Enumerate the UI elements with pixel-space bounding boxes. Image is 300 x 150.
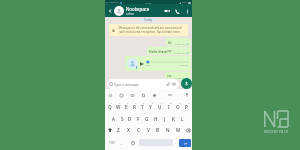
button[interactable]: X [123,125,133,135]
staticText: Noobspace [126,6,150,12]
staticText: 11:04 AM [178,64,189,67]
button[interactable]: Hello there??? [147,47,191,55]
staticText: Messages to this chat and calls are now … [116,26,184,34]
button[interactable]: Shift [105,125,114,135]
button[interactable]: O [173,100,182,113]
staticText: I [168,104,170,110]
staticText: 2 [119,102,121,105]
button[interactable]: Enter [179,139,191,147]
button[interactable]: . [173,135,179,150]
staticText: 0 [188,102,190,105]
staticText: 11:02 AM [174,42,185,45]
button[interactable]: Emoji [126,135,139,150]
staticText: E [125,104,128,110]
staticText: N [166,127,170,133]
button[interactable]: Keyboard tool 4 [152,93,156,97]
button[interactable]: Keyboard tool 3 [141,93,145,97]
button[interactable]: C [133,125,143,135]
staticText: Y [149,104,152,110]
button[interactable]: V [143,125,153,135]
staticText: Hello there??? [149,49,172,54]
button[interactable]: ?123 [106,135,118,150]
staticText: 3 [127,102,129,105]
button[interactable]: G [142,113,151,125]
button[interactable]: J [160,113,169,125]
button[interactable]: Back [105,4,192,17]
button[interactable]: T [138,100,146,113]
staticText: 5 [143,102,145,105]
button[interactable]: ??? [165,72,191,80]
staticText: 11:05 AM [174,76,185,79]
staticText: C [137,127,140,133]
button[interactable]: More [168,93,172,97]
button[interactable]: Type a message [107,79,179,89]
staticText: O [176,104,180,110]
button[interactable]: K [169,113,178,125]
button[interactable]: Keyboard tool 0 [108,93,112,97]
staticText: K [172,116,175,122]
button[interactable]: U [155,100,164,113]
button[interactable]: Keyboard tool 2 [130,93,134,97]
button[interactable]: , [118,135,126,150]
button[interactable]: R [130,100,138,113]
button[interactable]: Today [141,18,156,22]
button[interactable]: D [126,113,134,125]
staticText: . [175,140,177,145]
staticText: 12:26 [145,1,152,4]
staticText: 10:42 AM [109,1,119,4]
staticText: L [181,116,184,122]
staticText: H [154,116,158,122]
staticText: ?123 [109,141,115,145]
button[interactable]: N [163,125,173,135]
staticText: T [141,104,144,110]
button[interactable]: Q [106,100,114,113]
button[interactable]: P [182,100,191,113]
button[interactable]: More options [184,8,190,14]
button[interactable]: E [122,100,130,113]
button[interactable]: Messages to this chat and calls are now … [109,24,188,36]
staticText: J [164,116,166,122]
button[interactable]: Back [107,8,113,14]
staticText: X [127,127,130,133]
staticText: 4 [135,102,137,105]
staticText: 11:02 AM [174,51,185,54]
button[interactable]: 0:05 [125,56,191,71]
button[interactable]: Voice input [185,93,189,97]
button[interactable]: I [164,100,173,113]
staticText: 0:05 [146,64,151,67]
staticText: 9 [179,102,181,105]
staticText: V [147,127,150,133]
staticText: W [116,104,121,110]
button[interactable]: Backspace [183,125,192,135]
button[interactable]: Z [114,125,123,135]
button[interactable]: Video call [163,7,170,14]
button[interactable]: Hi [166,38,191,46]
button[interactable]: F [134,113,142,125]
staticText: B [156,127,160,133]
staticText: A [112,116,116,122]
staticText: P [185,104,188,110]
staticText: 8 [170,102,172,105]
staticText: NOOBSPACE [264,129,289,134]
staticText: Hi [168,40,172,45]
button[interactable]: Y [146,100,155,113]
button[interactable]: B [153,125,163,135]
button[interactable]: Voice message [181,78,192,89]
staticText: ??? [167,74,172,79]
button[interactable]: L [178,113,187,125]
staticText: Type a message [114,82,139,86]
button[interactable]: S [118,113,126,125]
staticText: Today [144,18,153,22]
staticText: U [158,104,162,110]
staticText: 1 [111,102,113,105]
button[interactable]: M [173,125,183,135]
button[interactable]: A [110,113,118,125]
staticText: 6 [152,102,154,105]
button[interactable]: Call [174,8,180,14]
staticText: , [121,140,123,145]
button[interactable]: H [151,113,160,125]
button[interactable]: Keyboard tool 1 [119,93,123,97]
staticText: Z [117,127,120,133]
button[interactable]: W [114,100,122,113]
